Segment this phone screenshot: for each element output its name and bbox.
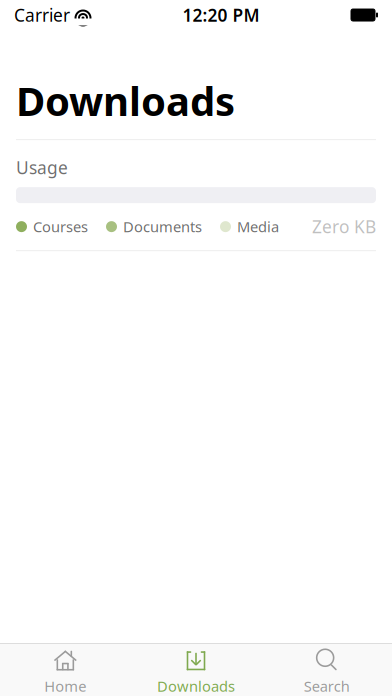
- button[interactable]: Search: [261, 640, 392, 696]
- staticText: Downloads: [16, 74, 235, 127]
- button[interactable]: Home: [0, 640, 131, 696]
- staticText: Media: [237, 217, 279, 236]
- button[interactable]: Downloads: [131, 640, 261, 696]
- staticText: Home: [44, 676, 86, 696]
- staticText: Zero KB: [312, 215, 376, 238]
- staticText: Documents: [123, 217, 202, 236]
- staticText: Courses: [33, 217, 88, 236]
- staticText: Carrier: [14, 3, 70, 26]
- staticText: Downloads: [157, 676, 235, 696]
- staticText: 12:20 PM: [182, 3, 259, 26]
- staticText: Usage: [16, 156, 68, 179]
- staticText: Search: [304, 676, 350, 696]
